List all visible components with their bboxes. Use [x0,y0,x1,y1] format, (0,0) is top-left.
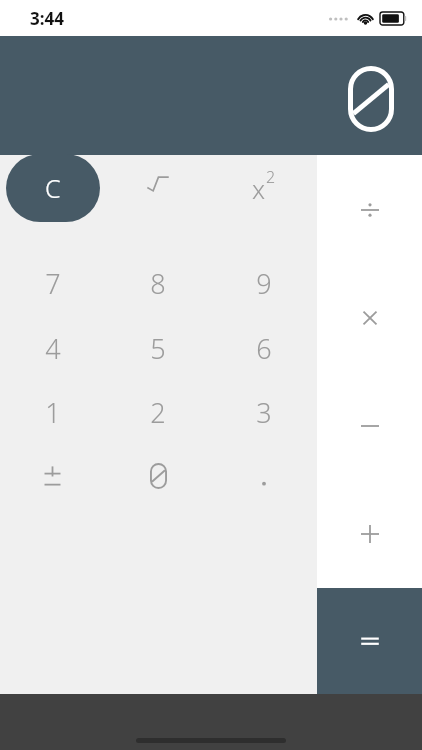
button[interactable]: 9 [211,251,317,316]
button[interactable]: 7 [0,251,105,316]
button[interactable]: Divide [317,155,422,264]
button[interactable]: Multiply [317,264,422,372]
button[interactable]: 8 [105,251,211,316]
button[interactable]: x squared [211,140,317,236]
button[interactable]: Decimal point [211,444,317,508]
button[interactable]: 4 [0,316,105,380]
button[interactable]: Subtract [317,372,422,480]
button[interactable] [105,444,211,508]
staticText: 5 [150,330,166,367]
staticText: 9 [256,265,272,302]
button[interactable]: Plus minus [0,444,105,508]
staticText: 1 [45,394,61,431]
button[interactable]: 2 [105,380,211,444]
button[interactable]: 6 [211,316,317,380]
button[interactable]: C [6,154,100,222]
staticText: 4 [45,330,61,367]
button[interactable]: Equals [317,588,422,694]
staticText: 2 [150,394,166,431]
staticText: 2 [266,166,276,188]
button[interactable]: 1 [0,380,105,444]
staticText: x [252,171,266,206]
button[interactable]: Square root [105,140,211,236]
staticText: 8 [150,265,166,302]
button[interactable]: 5 [105,316,211,380]
staticText: 6 [256,330,272,367]
staticText: C [45,171,61,205]
staticText: 3 [256,394,272,431]
staticText: 7 [45,265,61,302]
staticText: 3:44 [30,7,64,30]
button[interactable]: Add [317,480,422,588]
button[interactable]: 3 [211,380,317,444]
